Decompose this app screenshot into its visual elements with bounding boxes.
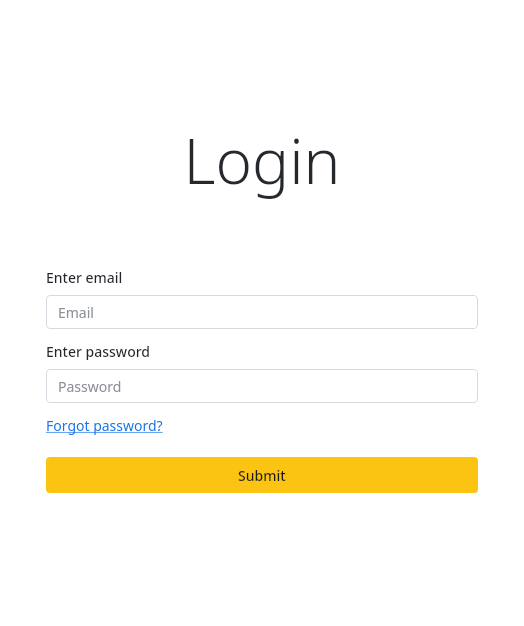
staticText: Email bbox=[58, 303, 94, 322]
staticText: Forgot password? bbox=[46, 416, 163, 435]
staticText: Enter password bbox=[46, 342, 151, 361]
staticText: Login bbox=[0, 118, 524, 202]
button[interactable]: Email bbox=[46, 295, 478, 329]
button[interactable]: Submit bbox=[46, 457, 478, 493]
staticText: Submit bbox=[238, 466, 286, 485]
button[interactable]: Forgot password? bbox=[46, 416, 163, 435]
staticText: Password bbox=[58, 377, 122, 396]
staticText: Enter email bbox=[46, 268, 123, 287]
button[interactable]: Password bbox=[46, 369, 478, 403]
